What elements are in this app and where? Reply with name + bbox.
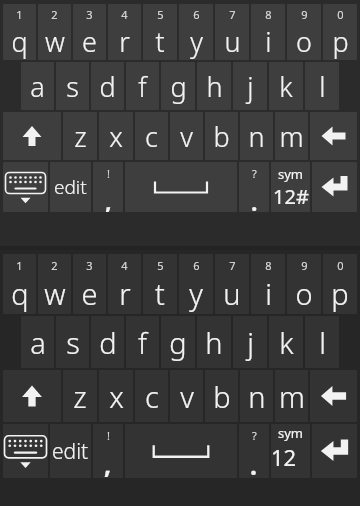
staticText: p — [331, 274, 349, 313]
button[interactable]: sym — [271, 162, 310, 212]
button[interactable]: 1 — [3, 254, 36, 314]
staticText: g — [169, 323, 187, 362]
button[interactable]: n — [240, 112, 273, 160]
staticText: u — [224, 23, 241, 60]
button[interactable]: a — [21, 62, 54, 110]
staticText: ? — [252, 166, 257, 181]
staticText: 1 — [16, 7, 23, 22]
button[interactable]: Enter — [312, 424, 357, 478]
button[interactable]: j — [233, 316, 267, 368]
staticText: i — [265, 23, 272, 60]
button[interactable]: 4 — [108, 254, 141, 314]
button[interactable]: h — [197, 316, 231, 368]
button[interactable]: a — [21, 316, 54, 368]
staticText: s — [66, 323, 80, 362]
staticText: r — [119, 23, 130, 60]
button[interactable]: s — [56, 316, 89, 368]
button[interactable]: Shift — [3, 370, 61, 422]
button[interactable]: 9 — [287, 4, 321, 60]
button[interactable]: 6 — [179, 4, 213, 60]
button[interactable]: Enter — [312, 162, 357, 212]
staticText: j — [247, 323, 254, 362]
button[interactable]: g — [161, 62, 195, 110]
button[interactable]: sym — [271, 424, 310, 478]
staticText: t — [155, 274, 165, 313]
button[interactable]: z — [63, 112, 97, 160]
button[interactable]: Shift — [3, 112, 61, 160]
button[interactable]: v — [170, 112, 203, 160]
button[interactable]: ! — [93, 162, 123, 212]
button[interactable]: 0 — [323, 254, 357, 314]
button[interactable]: n — [240, 370, 273, 422]
button[interactable]: z — [63, 370, 97, 422]
button[interactable]: f — [126, 316, 159, 368]
staticText: m — [279, 377, 305, 416]
button[interactable]: b — [205, 112, 238, 160]
staticText: z — [73, 377, 87, 416]
button[interactable]: j — [233, 62, 267, 110]
button[interactable]: v — [170, 370, 203, 422]
button[interactable]: 1 — [3, 4, 36, 60]
button[interactable]: 0 — [323, 4, 357, 60]
button[interactable]: Backspace — [310, 112, 357, 160]
button[interactable]: Backspace — [310, 370, 357, 422]
button[interactable]: m — [275, 370, 308, 422]
button[interactable]: c — [135, 370, 168, 422]
button[interactable]: 3 — [73, 254, 106, 314]
button[interactable]: ! — [93, 424, 123, 478]
staticText: s — [66, 68, 79, 105]
staticText: c — [145, 377, 159, 416]
button[interactable]: m — [275, 112, 308, 160]
button[interactable]: s — [56, 62, 89, 110]
button[interactable]: x — [99, 370, 133, 422]
staticText: 2 — [51, 258, 58, 273]
button[interactable]: d — [91, 316, 124, 368]
button[interactable]: 5 — [143, 4, 177, 60]
staticText: sym — [278, 424, 304, 442]
staticText: ? — [252, 428, 257, 443]
button[interactable]: l — [305, 316, 339, 368]
button[interactable]: b — [205, 370, 238, 422]
button[interactable]: 4 — [108, 4, 141, 60]
button[interactable]: 8 — [251, 4, 285, 60]
button[interactable]: edit — [50, 162, 91, 212]
button[interactable]: d — [91, 62, 124, 110]
button[interactable]: k — [269, 316, 303, 368]
staticText: 1 — [16, 258, 23, 273]
button[interactable]: c — [135, 112, 168, 160]
button[interactable]: 8 — [251, 254, 285, 314]
button[interactable]: edit — [50, 424, 91, 478]
button[interactable]: h — [197, 62, 231, 110]
button[interactable]: ? — [239, 162, 269, 212]
button[interactable]: l — [305, 62, 339, 110]
staticText: 7 — [229, 7, 236, 22]
staticText: . — [251, 186, 258, 212]
staticText: k — [279, 68, 293, 105]
button[interactable]: 7 — [215, 254, 249, 314]
button[interactable]: ? — [239, 424, 269, 478]
button[interactable]: 9 — [287, 254, 321, 314]
button[interactable]: Hide keyboard — [3, 162, 48, 212]
button[interactable]: 2 — [38, 254, 71, 314]
staticText: edit — [52, 437, 89, 466]
button[interactable]: 2 — [38, 4, 71, 60]
button[interactable]: g — [161, 316, 195, 368]
button[interactable]: x — [99, 112, 133, 160]
button[interactable]: Space — [125, 424, 237, 478]
staticText: 7 — [229, 258, 236, 273]
staticText: l — [319, 323, 326, 362]
button[interactable]: Space — [125, 162, 237, 212]
button[interactable]: 6 — [179, 254, 213, 314]
button[interactable]: Hide keyboard — [3, 424, 48, 478]
button[interactable]: 7 — [215, 4, 249, 60]
staticText: e — [81, 274, 98, 313]
staticText: 5 — [157, 258, 164, 273]
staticText: b — [213, 377, 231, 416]
staticText: sym — [278, 165, 304, 183]
staticText: 5 — [157, 7, 164, 22]
button[interactable]: 3 — [73, 4, 106, 60]
staticText: p — [332, 23, 349, 60]
button[interactable]: f — [126, 62, 159, 110]
button[interactable]: k — [269, 62, 303, 110]
button[interactable]: 5 — [143, 254, 177, 314]
